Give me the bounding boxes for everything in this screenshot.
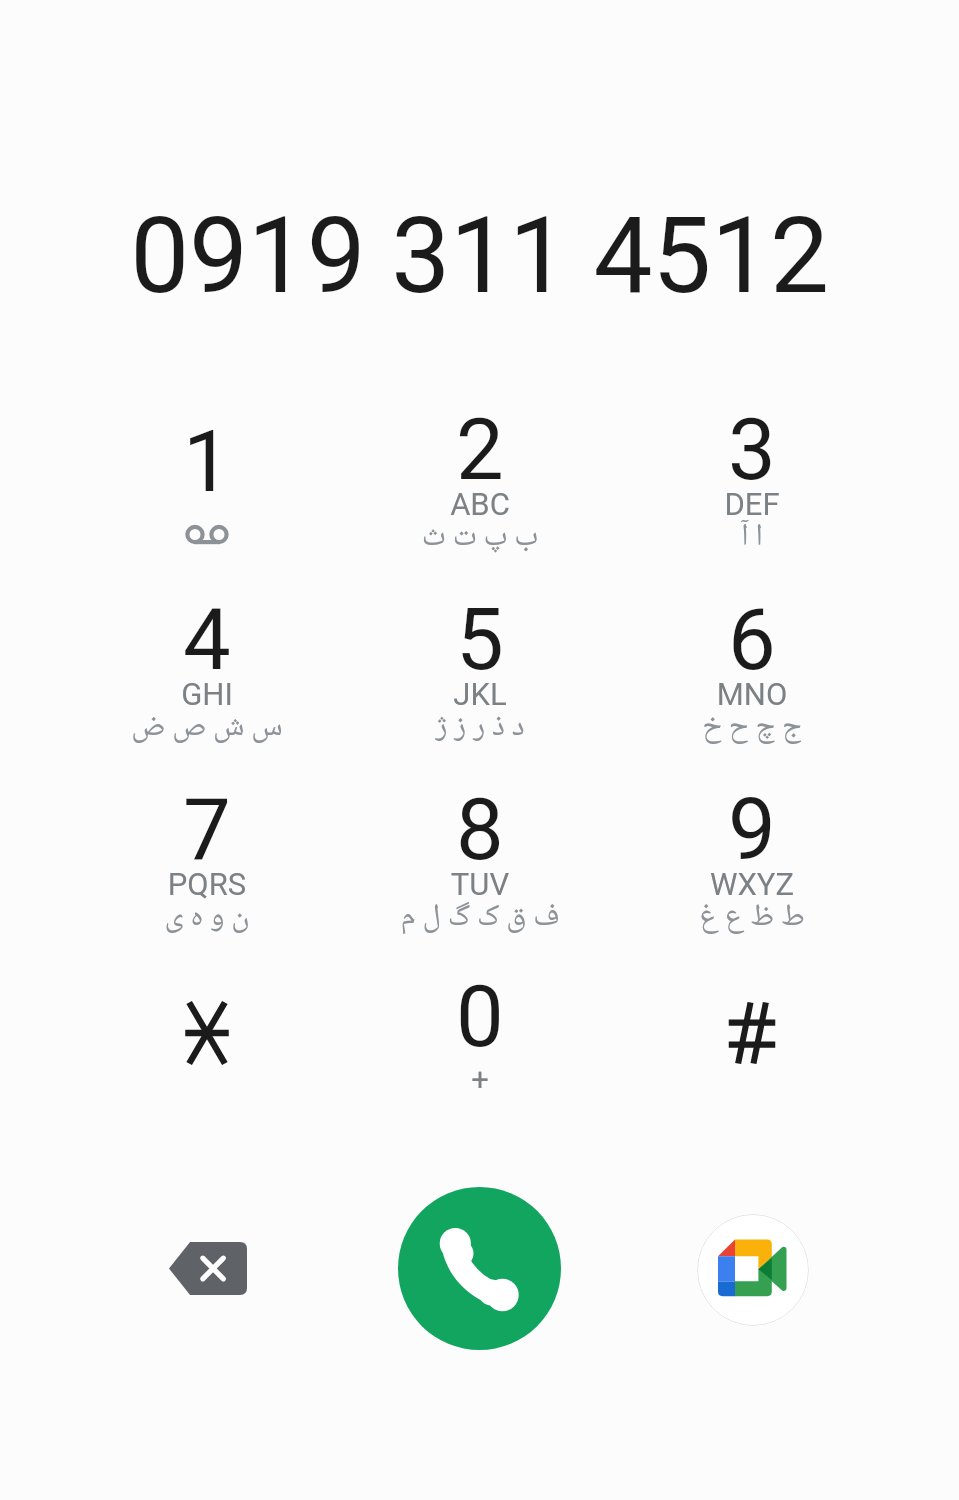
staticText: 6 <box>616 590 888 690</box>
staticText: ن و ه ی <box>71 896 343 938</box>
staticText: GHI <box>71 676 343 712</box>
staticText: ا آ <box>616 516 888 558</box>
button[interactable]: 4 <box>71 585 343 775</box>
button[interactable]: * <box>71 962 343 1152</box>
staticText: 2 <box>344 400 616 500</box>
staticText: د ذ ر ز ژ <box>344 706 616 748</box>
button[interactable]: 0 <box>344 962 616 1152</box>
button[interactable]: 3 <box>616 395 888 585</box>
staticText: 0919 311 4512 <box>0 195 959 1500</box>
button[interactable]: Call <box>398 1187 561 1350</box>
staticText: 8 <box>344 780 616 880</box>
staticText: MNO <box>616 676 888 712</box>
staticText: 0 <box>344 967 616 1067</box>
staticText: ABC <box>344 486 616 522</box>
button[interactable]: 8 <box>344 775 616 965</box>
staticText: + <box>344 1061 616 1097</box>
staticText: ط ظ ع غ <box>616 896 888 938</box>
staticText: ف ق ک گ ل م <box>344 896 616 938</box>
staticText: WXYZ <box>616 866 888 902</box>
staticText: DEF <box>616 486 888 522</box>
staticText: TUV <box>344 866 616 902</box>
button[interactable]: # <box>616 962 888 1152</box>
button[interactable]: 1 <box>71 395 343 585</box>
staticText: س ش ص ض <box>71 706 343 748</box>
staticText: JKL <box>344 676 616 712</box>
staticText: 1 <box>71 412 343 512</box>
button[interactable]: 2 <box>344 395 616 585</box>
button[interactable]: 9 <box>616 775 888 965</box>
staticText: 3 <box>616 400 888 500</box>
staticText: 9 <box>616 780 888 880</box>
staticText: 7 <box>71 780 343 880</box>
staticText: ج چ ح خ <box>616 706 888 748</box>
button[interactable]: 7 <box>71 775 343 965</box>
staticText: 4 <box>71 590 343 690</box>
button[interactable]: Video call <box>697 1214 809 1326</box>
button[interactable]: 6 <box>616 585 888 775</box>
button[interactable]: Backspace <box>150 1215 265 1320</box>
staticText: PQRS <box>71 866 343 902</box>
staticText: ب پ ت ث <box>344 516 616 558</box>
button[interactable]: 5 <box>344 585 616 775</box>
staticText: 5 <box>344 590 616 690</box>
